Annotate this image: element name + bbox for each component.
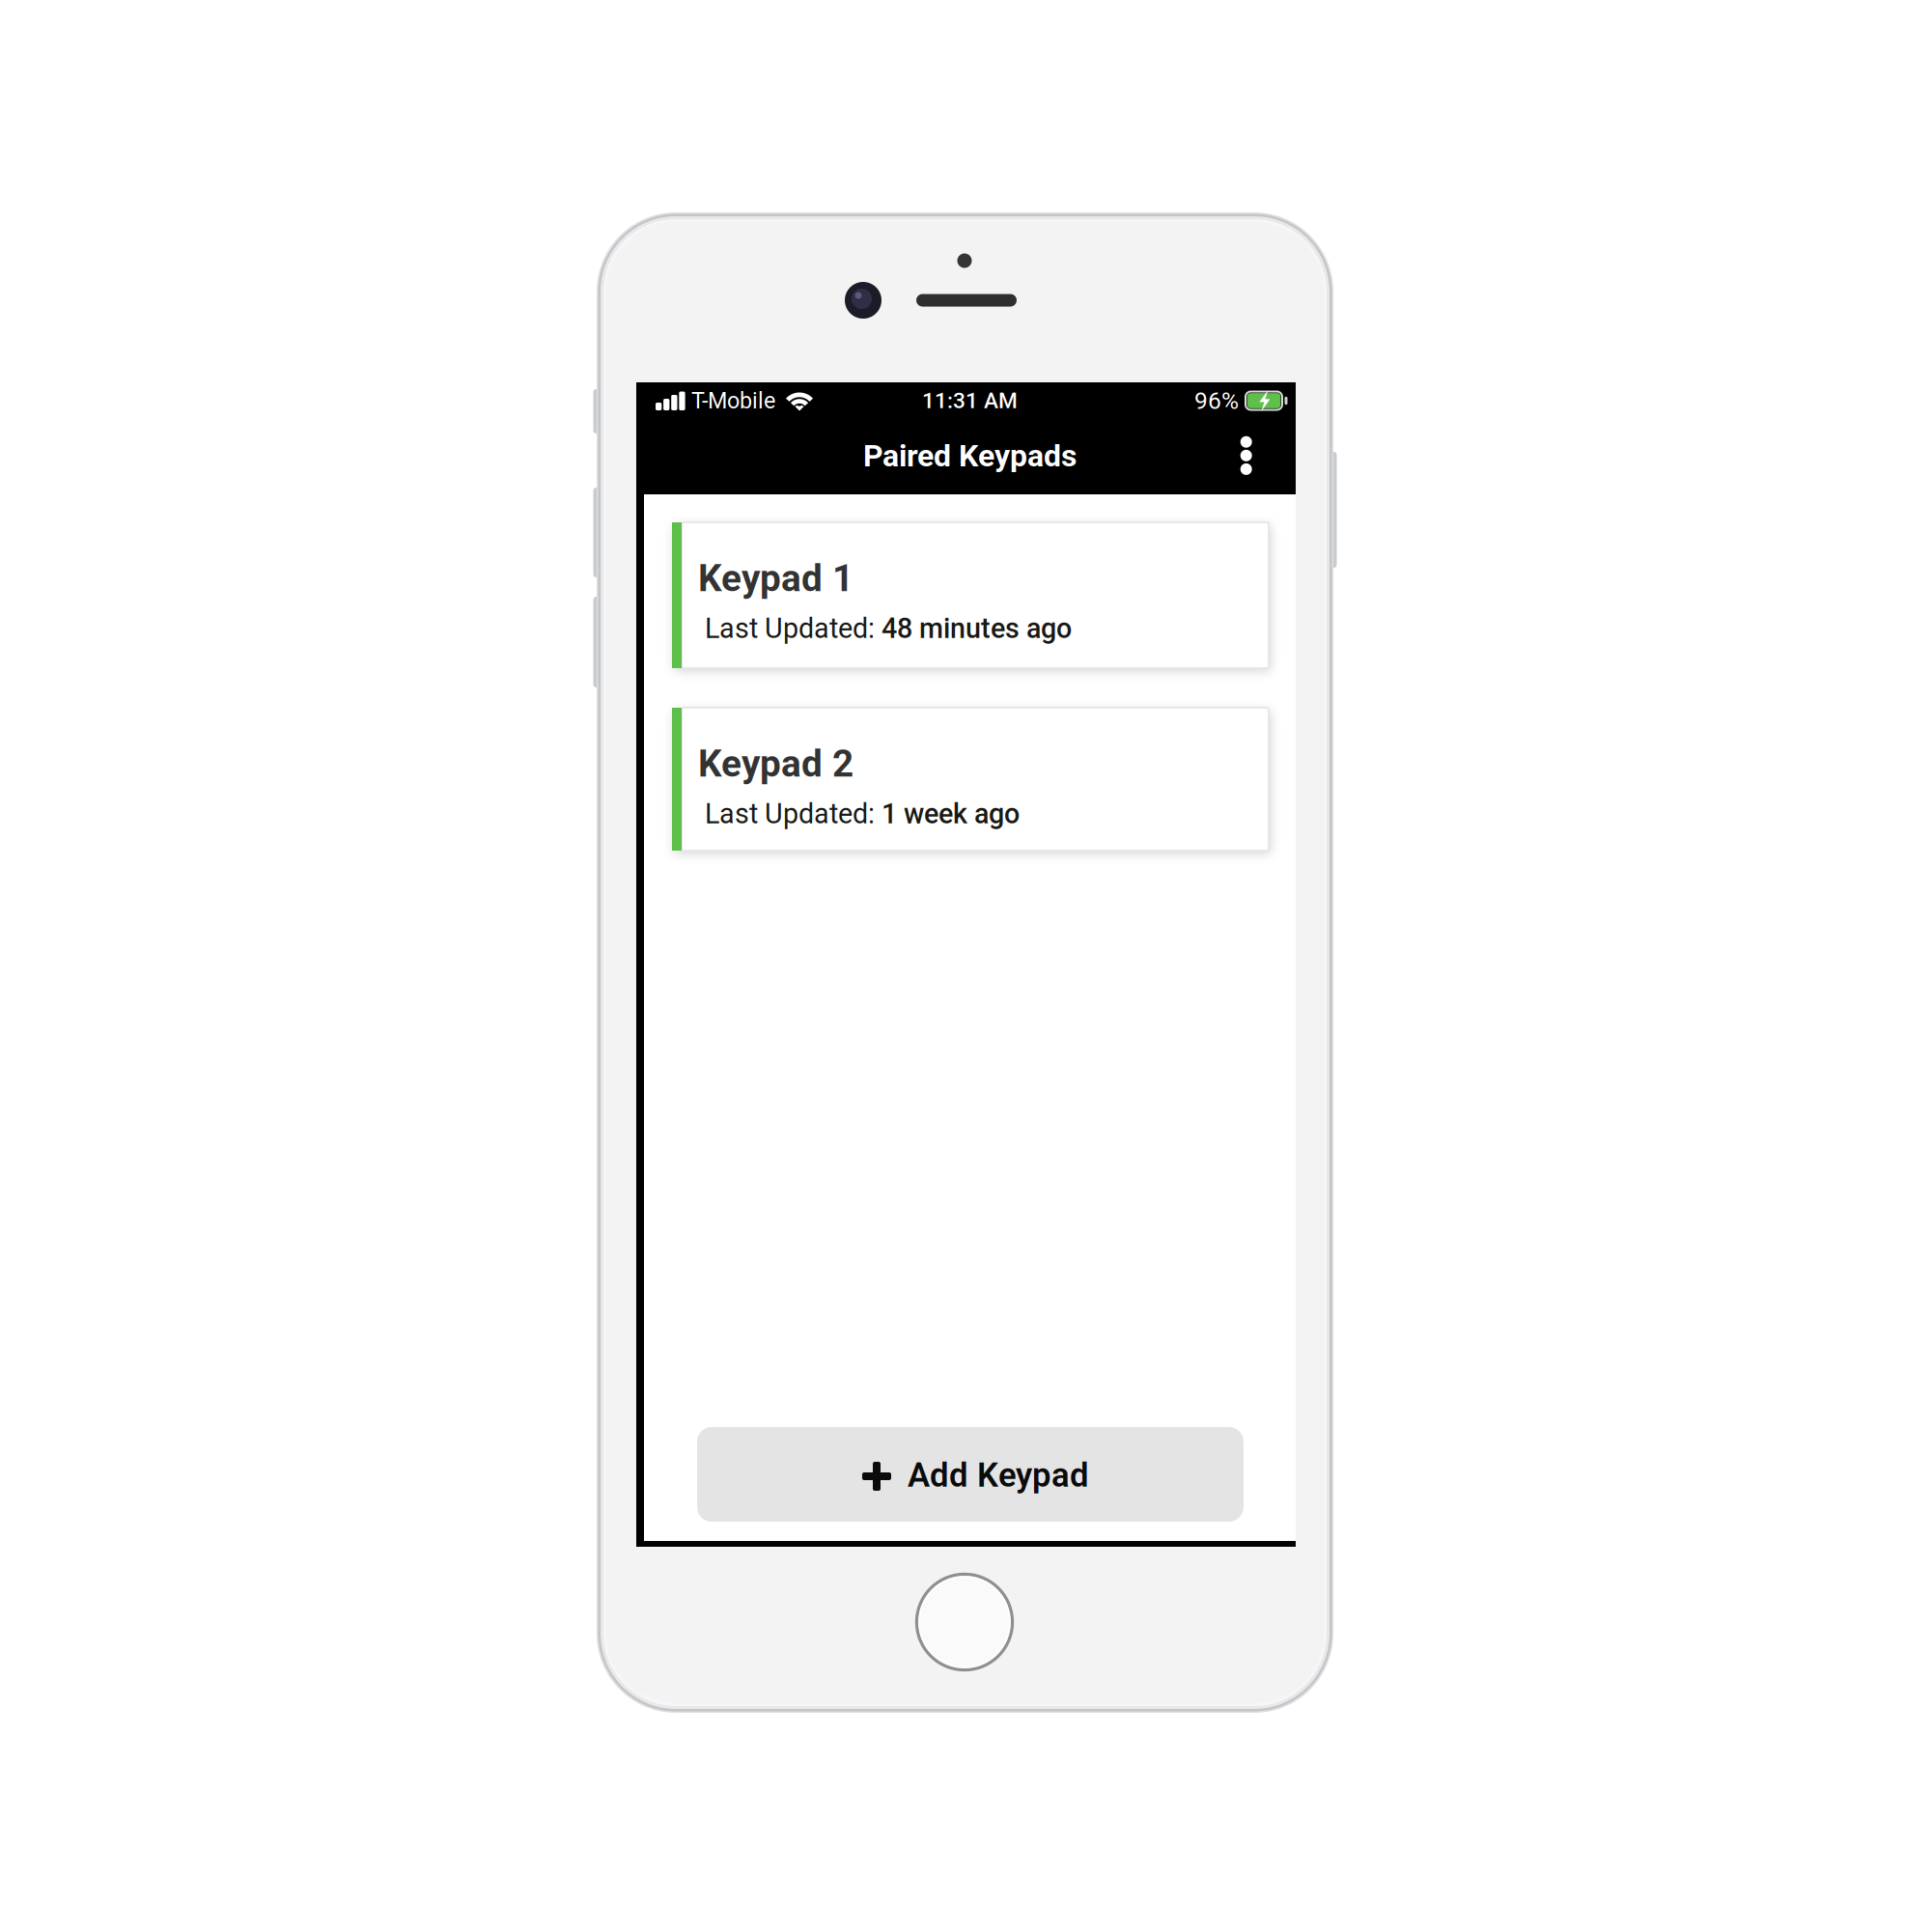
staticText: Keypad 1	[698, 556, 854, 600]
staticText: 11:31 AM	[922, 388, 1018, 414]
staticText: 96%	[1194, 387, 1239, 415]
staticText: Add Keypad	[908, 1456, 1089, 1495]
button[interactable]: More options	[0, 0, 1931, 1932]
staticText: Last Updated: 48 minutes ago	[705, 613, 1072, 644]
button[interactable]: Keypad 1	[0, 0, 1931, 1932]
button[interactable]: Keypad 2	[0, 0, 1931, 1932]
staticText: Paired Keypads	[863, 438, 1077, 474]
button[interactable]: Add Keypad	[0, 0, 1931, 1932]
staticText: T-Mobile	[691, 387, 775, 414]
staticText: Last Updated: 1 week ago	[705, 798, 1020, 830]
staticText: Keypad 2	[698, 742, 854, 786]
